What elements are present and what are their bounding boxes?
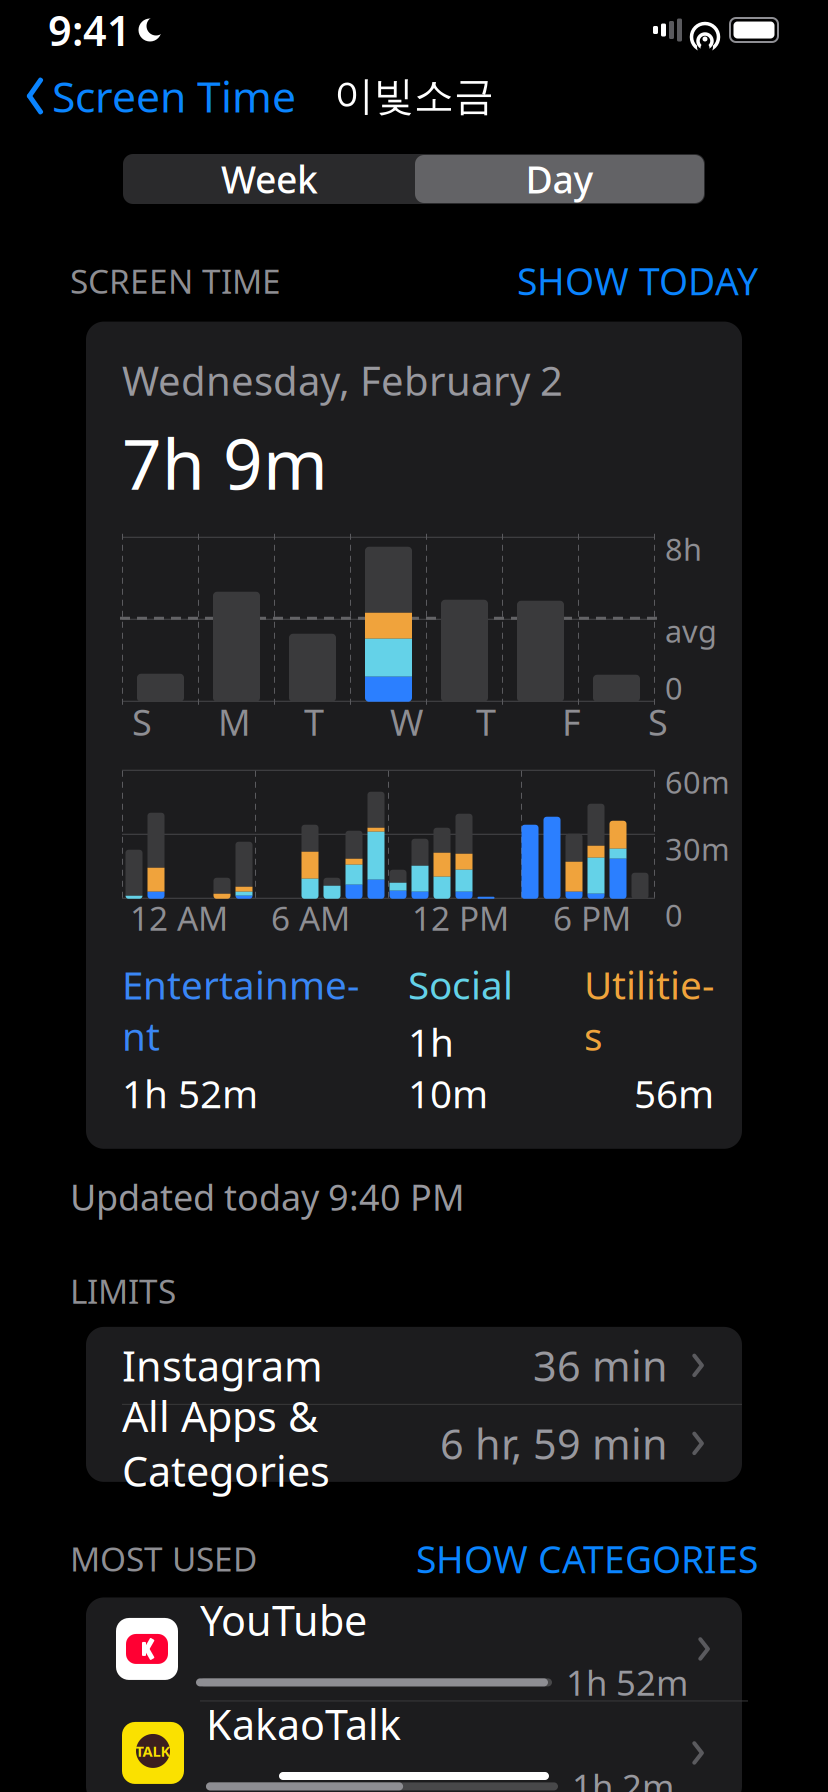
staticText: MOST USED (70, 1536, 257, 1581)
button[interactable]: Day (415, 155, 704, 203)
staticText: 0 (665, 667, 683, 708)
staticText: T (304, 698, 324, 746)
staticText: Day (525, 154, 593, 204)
staticText: All Apps & Categories (122, 1388, 330, 1498)
staticText: T (476, 698, 496, 746)
staticText: LIMITS (70, 1269, 176, 1313)
staticText: Week (221, 154, 318, 204)
staticText: 이빛소금 (334, 71, 494, 120)
staticText: 9:41 (48, 3, 131, 57)
staticText: 56m (634, 1067, 714, 1119)
button[interactable]: All Apps & Categories (86, 1405, 742, 1482)
button[interactable]: Screen Time (22, 62, 300, 130)
staticText: 30m (665, 828, 730, 869)
button[interactable]: SHOW CATEGORIES (416, 1534, 758, 1583)
staticText: 1h 52m (122, 1067, 258, 1119)
staticText: 7h 9m (122, 417, 328, 509)
staticText: 8h (665, 528, 702, 569)
staticText: 1h 2m (572, 1763, 674, 1792)
staticText: M (218, 698, 251, 746)
button[interactable]: Week (124, 154, 415, 204)
staticText: Utilities (584, 959, 714, 1061)
staticText: W (390, 698, 423, 746)
staticText: Updated today 9:40 PM (70, 1173, 465, 1221)
staticText: 6 hr, 59 min (440, 1416, 668, 1471)
staticText: Wednesday, February 2 (122, 354, 563, 407)
button[interactable]: YouTube (80, 1597, 748, 1701)
staticText: Social (408, 959, 513, 1010)
button[interactable]: Instagram (86, 1327, 742, 1405)
staticText: KakaoTalk (206, 1696, 401, 1751)
staticText: Entertainment (122, 959, 359, 1061)
staticText: 0 (665, 894, 683, 935)
staticText: SHOW CATEGORIES (416, 1534, 758, 1583)
button[interactable]: SHOW TODAY (517, 256, 758, 306)
staticText: SCREEN TIME (70, 259, 281, 303)
staticText: 36 min (533, 1338, 668, 1393)
staticText: TALK (135, 1741, 170, 1761)
staticText: 12 PM (412, 896, 509, 940)
staticText: 6 PM (553, 896, 631, 940)
staticText: YouTube (200, 1592, 367, 1647)
staticText: 1h 52m (566, 1659, 688, 1705)
button[interactable]: TALK (86, 1701, 742, 1792)
staticText: 60m (665, 761, 730, 802)
staticText: avg (665, 610, 717, 651)
staticText: S (132, 698, 152, 746)
staticText: 1h 10m (408, 1016, 488, 1119)
staticText: S (648, 698, 668, 746)
staticText: Screen Time (52, 68, 296, 124)
staticText: Instagram (122, 1338, 323, 1393)
staticText: SHOW TODAY (517, 256, 758, 306)
staticText: F (562, 698, 581, 746)
staticText: 6 AM (271, 896, 350, 940)
staticText: 12 AM (130, 896, 228, 940)
